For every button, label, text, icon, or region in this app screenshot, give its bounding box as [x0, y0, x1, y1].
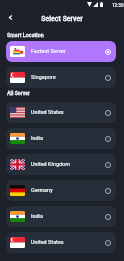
staticText: India	[31, 134, 43, 141]
button[interactable]: Singapore	[6, 67, 116, 88]
staticText: 12:30	[112, 2, 124, 8]
staticText: United Kingdom	[31, 160, 70, 167]
staticText: Singapore	[31, 73, 56, 80]
button[interactable]: United States	[6, 232, 116, 253]
button[interactable]: Germany	[6, 180, 116, 201]
button[interactable]: United States	[6, 102, 116, 123]
button[interactable]: Back	[4, 11, 17, 24]
staticText: Smart Location	[7, 31, 44, 38]
staticText: United States	[31, 108, 64, 115]
staticText: All Server	[7, 89, 30, 96]
staticText: Germany	[31, 186, 53, 193]
button[interactable]: India	[6, 128, 116, 149]
button[interactable]: United Kingdom	[6, 154, 116, 175]
staticText: United States	[31, 238, 64, 245]
staticText: Fastest Server	[31, 47, 66, 54]
staticText: India	[31, 212, 43, 219]
button[interactable]: Fastest Server	[6, 41, 116, 62]
staticText: Select Server	[41, 14, 83, 23]
button[interactable]: India	[6, 206, 116, 227]
